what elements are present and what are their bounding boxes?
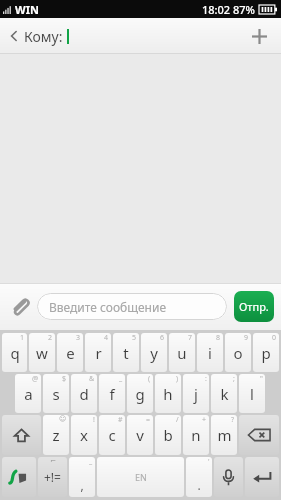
staticText: ! xyxy=(93,415,95,425)
button[interactable]: / xyxy=(155,415,181,455)
staticText: Введите сообщение xyxy=(49,299,167,315)
staticText: 0 xyxy=(272,333,277,343)
staticText: e xyxy=(66,343,75,363)
button[interactable]: = xyxy=(127,415,153,455)
staticText: 7 xyxy=(188,333,193,343)
staticText: _ xyxy=(89,457,93,467)
button[interactable]: Отпр. xyxy=(234,291,274,322)
button[interactable]: Symbols xyxy=(38,457,67,497)
button[interactable]: 9 xyxy=(225,333,251,372)
button[interactable]: 0 xyxy=(253,333,279,372)
staticText: b xyxy=(163,425,173,445)
staticText: f xyxy=(109,384,115,404)
button[interactable]: 6 xyxy=(141,333,167,372)
staticText: Кому: xyxy=(24,27,63,46)
staticText: 18:02 87% xyxy=(202,2,255,17)
button[interactable]: # xyxy=(99,415,125,455)
staticText: a xyxy=(24,384,33,404)
button[interactable]: Введите сообщение xyxy=(37,293,227,320)
staticText: EN xyxy=(135,471,147,483)
staticText: z xyxy=(52,425,60,445)
button[interactable]: $ xyxy=(43,374,69,413)
button[interactable]: ☺ xyxy=(43,415,69,455)
staticText: + xyxy=(202,415,207,425)
staticText: o xyxy=(233,343,243,363)
button[interactable]: _ xyxy=(69,457,95,497)
button[interactable]: ! xyxy=(71,415,97,455)
staticText: d xyxy=(79,384,89,404)
staticText: _ xyxy=(119,374,123,384)
staticText: ⌐ xyxy=(50,457,56,465)
staticText: c xyxy=(108,425,116,445)
button[interactable]: 4 xyxy=(85,333,111,372)
staticText: 2 xyxy=(48,333,53,343)
staticText: / xyxy=(176,415,179,425)
staticText: WIN xyxy=(15,2,39,17)
staticText: g xyxy=(135,384,145,404)
staticText: j xyxy=(194,384,198,404)
staticText: h xyxy=(163,384,173,404)
staticText: # xyxy=(118,415,123,425)
button[interactable]: 8 xyxy=(197,333,223,372)
button[interactable]: Enter xyxy=(245,457,279,497)
button[interactable]: Back xyxy=(8,28,20,44)
staticText: 4 xyxy=(104,333,109,343)
staticText: k xyxy=(220,384,229,404)
staticText: & xyxy=(89,374,95,384)
staticText: s xyxy=(52,384,60,404)
button[interactable]: Shift xyxy=(2,415,41,455)
staticText: i xyxy=(208,343,212,363)
button[interactable]: _ xyxy=(99,374,125,413)
staticText: ' xyxy=(208,457,210,467)
button[interactable]: ; xyxy=(211,374,237,413)
staticText: 6 xyxy=(160,333,165,343)
staticText: q xyxy=(10,343,20,363)
staticText: w xyxy=(36,343,48,363)
staticText: u xyxy=(177,343,187,363)
button[interactable]: & xyxy=(71,374,97,413)
button[interactable]: 5 xyxy=(113,333,139,372)
button[interactable]: 2 xyxy=(29,333,55,372)
staticText: ? xyxy=(231,415,235,425)
button[interactable]: ( xyxy=(127,374,153,413)
staticText: v xyxy=(136,425,144,445)
staticText: r xyxy=(95,343,102,363)
staticText: +!= xyxy=(44,469,61,485)
staticText: m xyxy=(217,425,232,445)
button[interactable]: EN xyxy=(97,457,184,497)
staticText: 9 xyxy=(244,333,249,343)
button[interactable]: ? xyxy=(211,415,237,455)
button[interactable]: : xyxy=(183,374,209,413)
button[interactable]: ) xyxy=(155,374,181,413)
button[interactable]: Attach xyxy=(7,294,33,320)
staticText: ; xyxy=(233,374,235,384)
staticText: 1 xyxy=(20,333,25,343)
button[interactable]: Handwriting xyxy=(2,457,36,497)
staticText: t xyxy=(123,343,129,363)
staticText: l xyxy=(250,384,254,404)
staticText: y xyxy=(150,343,158,363)
button[interactable]: " xyxy=(239,374,265,413)
button[interactable]: Voice input xyxy=(214,457,243,497)
staticText: 3 xyxy=(76,333,81,343)
staticText: " xyxy=(260,374,263,384)
button[interactable]: @ xyxy=(15,374,41,413)
staticText: p xyxy=(261,343,271,363)
button[interactable]: + xyxy=(183,415,209,455)
button[interactable]: 3 xyxy=(57,333,83,372)
staticText: Отпр. xyxy=(239,299,269,314)
button[interactable]: 1 xyxy=(2,333,27,372)
button[interactable]: ' xyxy=(186,457,212,497)
button[interactable]: 7 xyxy=(169,333,195,372)
staticText: . xyxy=(197,477,201,493)
staticText: ( xyxy=(148,374,151,384)
button[interactable]: Add recipient xyxy=(245,22,273,50)
staticText: , xyxy=(80,477,84,493)
staticText: x xyxy=(80,425,88,445)
staticText: @ xyxy=(32,374,39,384)
staticText: : xyxy=(205,374,207,384)
staticText: $ xyxy=(62,374,67,384)
button[interactable]: Backspace xyxy=(239,415,279,455)
staticText: 8 xyxy=(216,333,221,343)
staticText: = xyxy=(146,415,151,425)
